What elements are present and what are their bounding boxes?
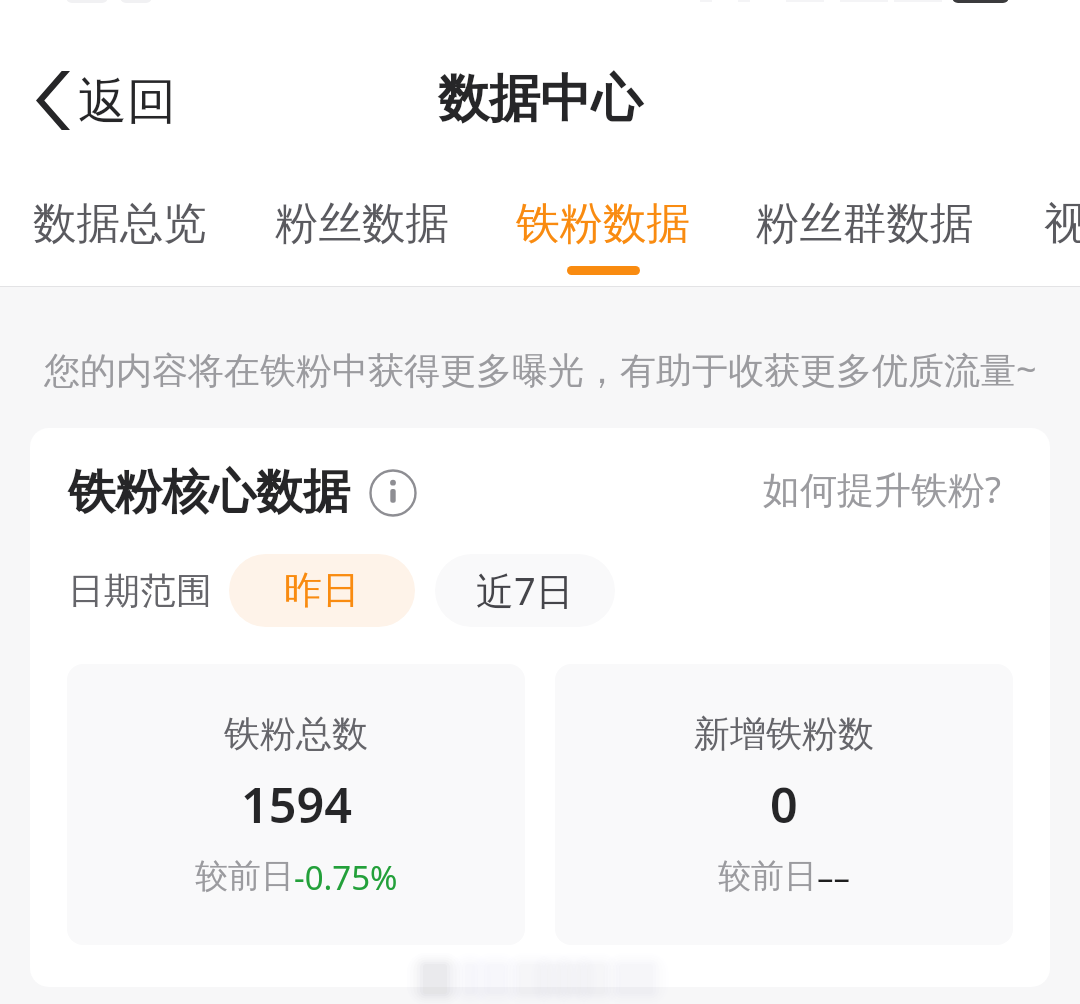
staticText: 粉丝数据	[275, 196, 449, 251]
staticText: 视	[1044, 196, 1080, 251]
staticText: 日期范围	[68, 568, 212, 613]
button[interactable]: 新增铁粉数	[555, 664, 1013, 945]
button[interactable]: 说明	[369, 469, 417, 517]
staticText: 较前日	[195, 855, 294, 897]
staticText: 如何提升铁粉?	[763, 463, 1002, 514]
staticText: 您的内容将在铁粉中获得更多曝光，有助于收获更多优质流量~	[44, 345, 1037, 394]
button[interactable]: 粉丝数据	[275, 196, 449, 275]
staticText: 数据中心	[0, 67, 1080, 131]
staticText: -0.75%	[294, 855, 398, 900]
staticText: 返回	[78, 71, 176, 133]
button[interactable]: 数据总览	[33, 196, 207, 275]
staticText: ––	[817, 855, 850, 900]
staticText: 0	[770, 771, 798, 837]
button[interactable]: 昨日	[229, 554, 415, 627]
staticText: 铁粉数据	[516, 196, 690, 251]
staticText: 铁粉核心数据	[68, 463, 350, 522]
staticText: 铁粉总数	[224, 711, 368, 756]
button[interactable]: 近7日	[435, 554, 615, 627]
staticText: 1594	[241, 771, 352, 837]
button[interactable]: 粉丝群数据	[756, 196, 974, 275]
button[interactable]: 视	[1044, 196, 1080, 275]
staticText: 新增铁粉数	[694, 711, 874, 756]
staticText: 昨日	[284, 566, 360, 614]
button[interactable]: 铁粉数据	[516, 196, 690, 275]
staticText: 粉丝群数据	[756, 196, 974, 251]
button[interactable]: 返回	[22, 61, 186, 139]
staticText: 较前日	[718, 855, 817, 897]
staticText: 近7日	[476, 564, 574, 616]
button[interactable]: 如何提升铁粉?	[759, 463, 1006, 514]
staticText: 数据总览	[33, 196, 207, 251]
button[interactable]: 铁粉总数	[67, 664, 525, 945]
